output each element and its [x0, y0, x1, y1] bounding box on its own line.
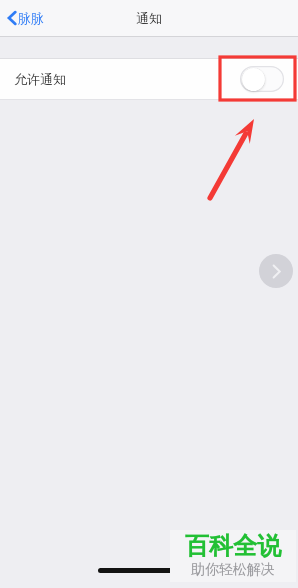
button[interactable]: Next	[259, 254, 293, 288]
button[interactable]: Back to 脉脉	[8, 0, 44, 36]
button[interactable]: 允许通知	[0, 59, 298, 99]
button[interactable]: 允许通知 toggle, off	[240, 66, 284, 92]
staticText: 允许通知	[14, 71, 66, 87]
staticText: 脉脉	[18, 10, 44, 26]
staticText: 通知	[136, 10, 162, 26]
staticText: 百科全说	[185, 531, 281, 561]
staticText: 助你轻松解决	[191, 561, 275, 579]
